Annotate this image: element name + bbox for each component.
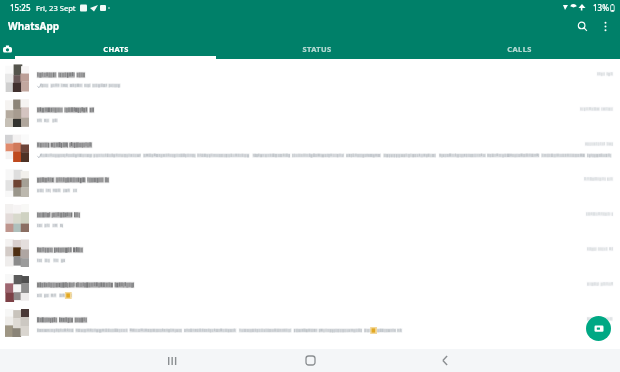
button[interactable] [0, 199, 620, 234]
staticText: CHATS [103, 44, 129, 54]
staticText: WhatsApp [8, 19, 60, 33]
staticText: 13% [593, 2, 609, 13]
staticText: STATUS [302, 44, 332, 54]
staticText: Fri, 23 Sept [36, 3, 76, 13]
button[interactable] [0, 304, 620, 339]
button[interactable]: Camera [0, 40, 15, 59]
button[interactable] [0, 59, 620, 94]
button[interactable] [0, 129, 620, 164]
button[interactable]: CHATS [15, 40, 216, 59]
staticText: 15:25 [10, 2, 31, 13]
button[interactable]: STATUS [216, 40, 418, 59]
button[interactable]: CALLS [418, 40, 620, 59]
button[interactable]: Search [571, 15, 593, 37]
button[interactable]: Recent apps [161, 349, 183, 372]
button[interactable]: Home [299, 349, 321, 372]
button[interactable]: New chat [586, 316, 611, 341]
button[interactable] [0, 269, 620, 304]
button[interactable] [0, 234, 620, 269]
staticText: CALLS [507, 44, 532, 54]
button[interactable] [0, 164, 620, 199]
button[interactable]: Back [434, 349, 456, 372]
button[interactable]: More options [594, 15, 616, 37]
button[interactable] [0, 94, 620, 129]
